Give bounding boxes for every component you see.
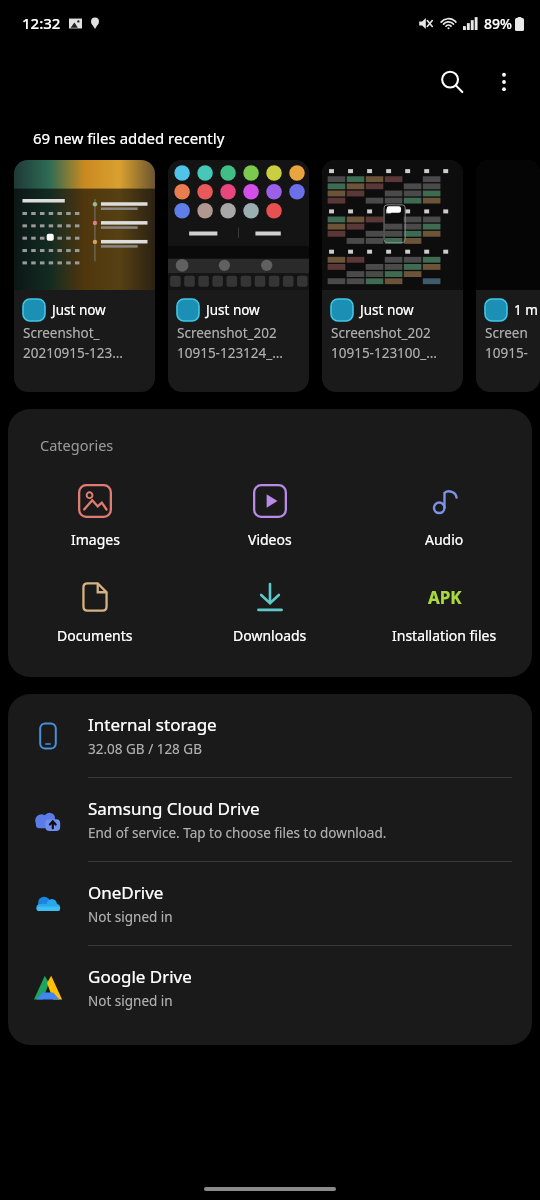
button[interactable]: Just now — [322, 160, 463, 392]
staticText: Just now — [360, 301, 414, 319]
staticText: Screenshot_202 10915-123100_… — [331, 324, 437, 362]
staticText: Screenshot_202 10915-123124_… — [177, 324, 283, 362]
staticText: Installation files — [392, 626, 497, 645]
staticText: Screen 10915- — [485, 324, 528, 362]
button[interactable]: Samsung Cloud Drive — [8, 778, 532, 861]
staticText: Documents — [57, 626, 133, 645]
staticText: OneDrive — [88, 881, 164, 904]
staticText: 89% — [484, 14, 512, 33]
staticText: Downloads — [233, 626, 307, 645]
staticText: Just now — [206, 301, 260, 319]
staticText: 12:32 — [22, 13, 61, 33]
staticText: Internal storage — [88, 713, 217, 736]
staticText: APK — [428, 586, 462, 609]
button[interactable]: Search — [428, 58, 476, 106]
button[interactable]: OneDrive — [8, 862, 532, 945]
staticText: Screenshot_ 20210915-123… — [23, 324, 123, 362]
button[interactable]: Documents — [8, 573, 182, 649]
button[interactable]: Just now — [14, 160, 155, 392]
button[interactable]: Internal storage — [8, 694, 532, 777]
button[interactable]: 1 m — [476, 160, 540, 392]
staticText: 1 m — [514, 301, 538, 319]
button[interactable]: Videos — [182, 477, 357, 553]
button[interactable]: Images — [8, 477, 182, 553]
button[interactable]: Audio — [357, 477, 532, 553]
staticText: End of service. Tap to choose files to d… — [88, 824, 387, 842]
button[interactable]: Google Drive — [8, 946, 532, 1029]
staticText: Audio — [425, 530, 464, 549]
button[interactable]: APK — [357, 573, 532, 649]
staticText: Categories — [40, 435, 114, 455]
staticText: Google Drive — [88, 965, 192, 988]
button[interactable]: More options — [480, 58, 528, 106]
staticText: Images — [71, 530, 120, 549]
staticText: Videos — [248, 530, 292, 549]
staticText: Just now — [52, 301, 106, 319]
staticText: 69 new files added recently — [33, 128, 225, 148]
staticText: Samsung Cloud Drive — [88, 797, 260, 820]
button[interactable]: Downloads — [182, 573, 357, 649]
button[interactable]: Just now — [168, 160, 309, 392]
staticText: Not signed in — [88, 908, 173, 926]
staticText: Not signed in — [88, 992, 173, 1010]
staticText: 32.08 GB / 128 GB — [88, 740, 202, 758]
